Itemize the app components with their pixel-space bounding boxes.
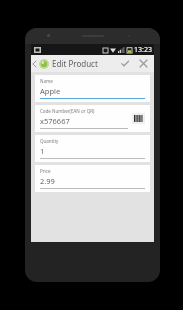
staticText: Quantity xyxy=(40,138,59,144)
button[interactable]: Code Number(EAN or QR) xyxy=(35,105,150,132)
button[interactable]: App icon xyxy=(38,58,49,69)
staticText: x576667 xyxy=(40,116,70,126)
button[interactable]: Back xyxy=(31,55,38,72)
button[interactable]: Name xyxy=(35,75,150,102)
button[interactable]: Save xyxy=(116,55,134,72)
button[interactable]: Quantity xyxy=(35,135,150,162)
staticText: 13:23 xyxy=(134,45,152,55)
button[interactable]: Price xyxy=(35,165,150,192)
staticText: Price xyxy=(40,168,51,174)
staticText: Edit Product xyxy=(52,58,98,69)
staticText: 2.99 xyxy=(40,176,55,186)
staticText: Name xyxy=(40,78,53,84)
staticText: Code Number(EAN or QR) xyxy=(40,108,95,114)
button[interactable]: Scan barcode xyxy=(132,113,145,124)
staticText: 1 xyxy=(40,146,45,156)
button[interactable]: Cancel xyxy=(134,55,152,72)
staticText: Apple xyxy=(40,86,61,96)
